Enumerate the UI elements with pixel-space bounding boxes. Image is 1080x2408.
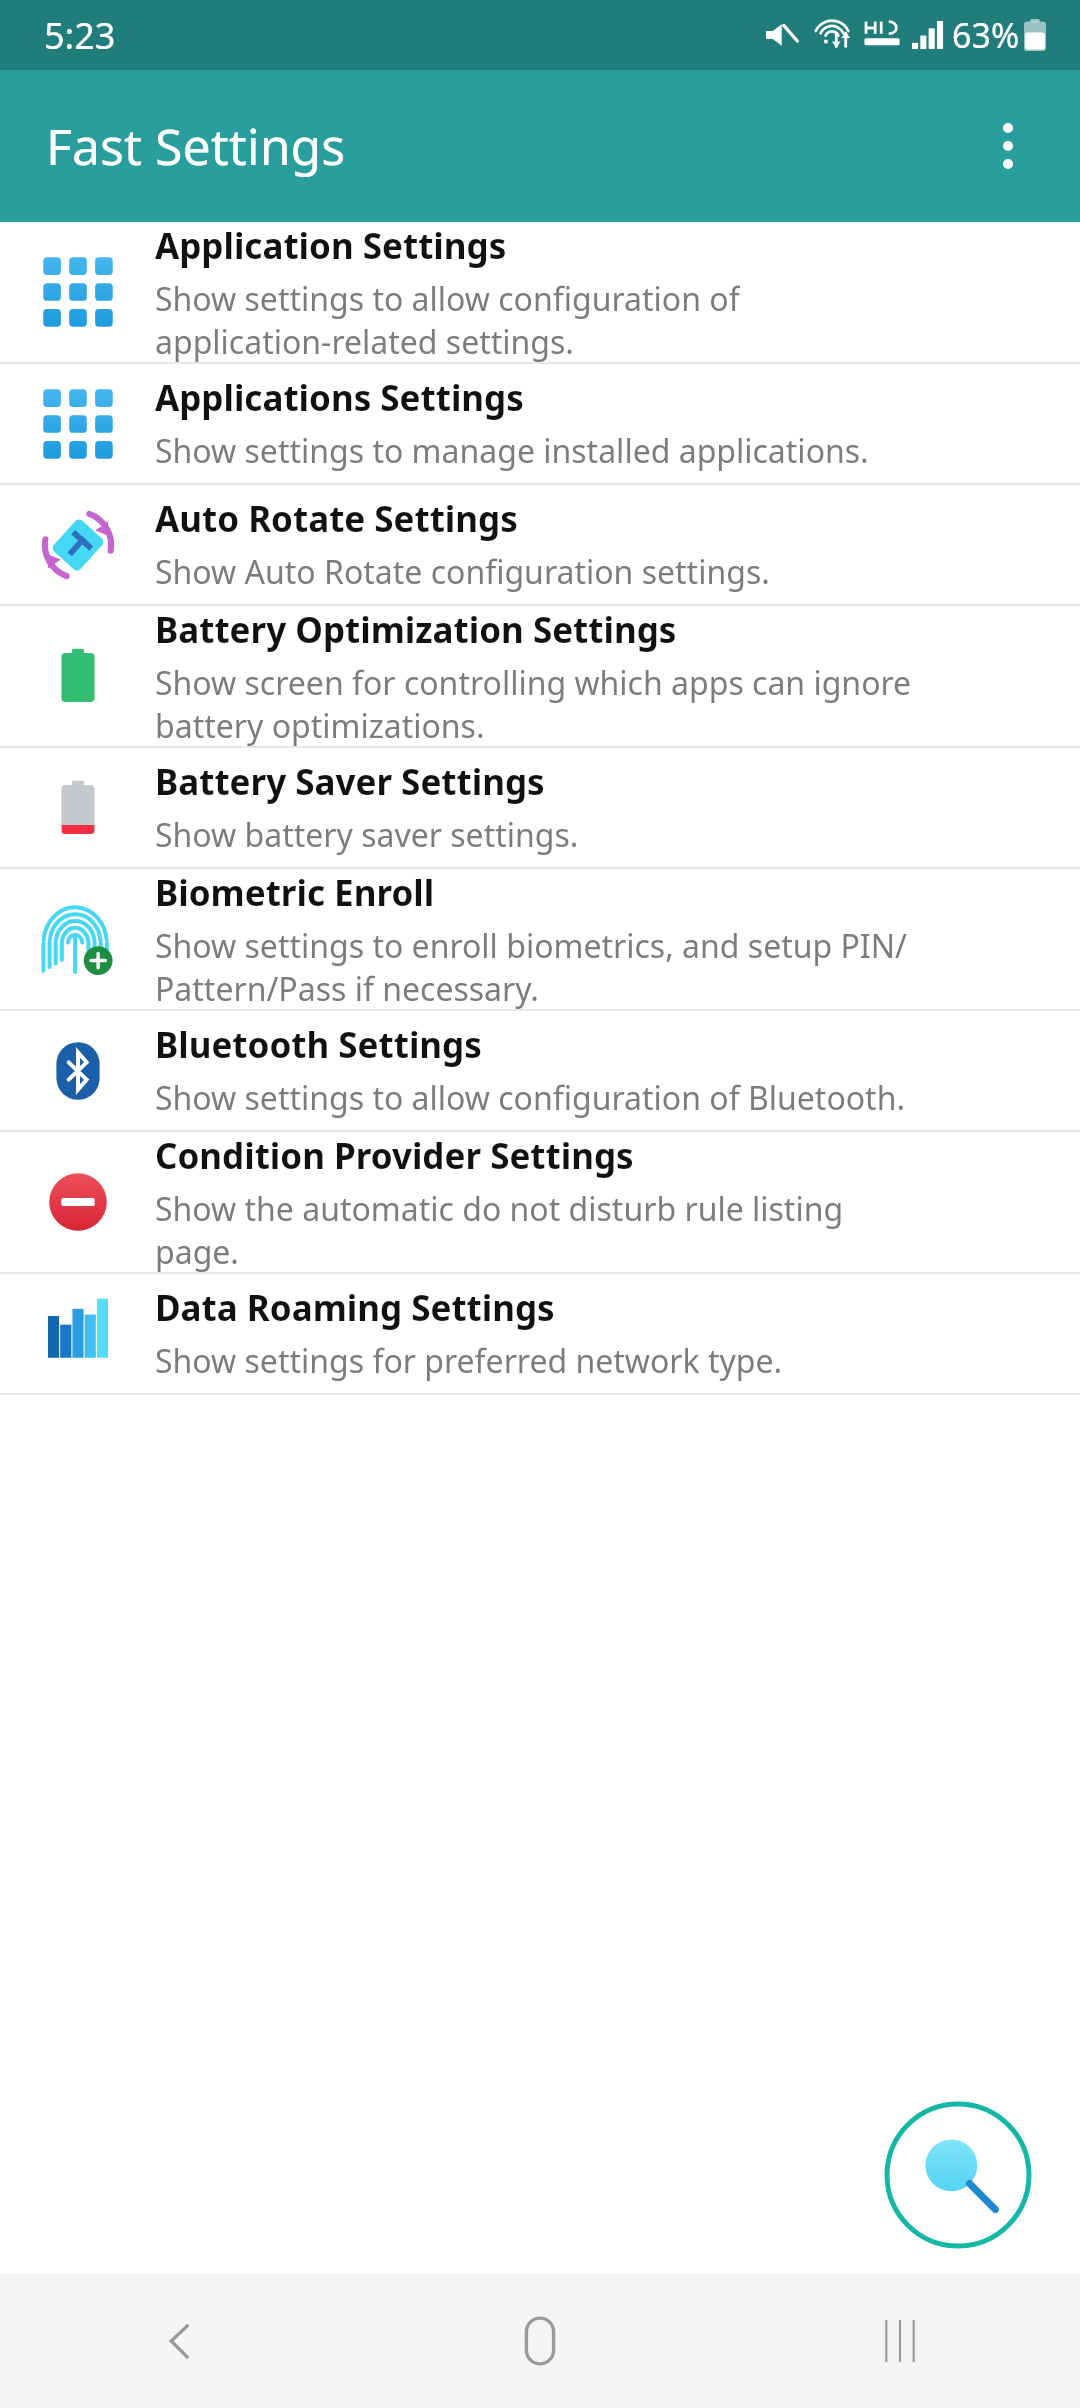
- staticText: Fast Settings: [46, 112, 346, 180]
- staticText: Show settings to allow configuration of …: [155, 1076, 906, 1120]
- staticText: Show screen for controlling which apps c…: [155, 661, 912, 746]
- button[interactable]: Biometric Enroll: [0, 869, 1080, 1009]
- button[interactable]: Battery Saver Settings: [0, 748, 1080, 867]
- button[interactable]: Back: [0, 2273, 360, 2408]
- button[interactable]: Bluetooth Settings: [0, 1011, 1080, 1130]
- staticText: Data Roaming Settings: [155, 1284, 555, 1332]
- staticText: Bluetooth Settings: [155, 1021, 482, 1069]
- staticText: Show settings to allow configuration of …: [155, 277, 740, 362]
- button[interactable]: Battery Optimization Settings: [0, 606, 1080, 746]
- staticText: Show settings to manage installed applic…: [155, 429, 869, 473]
- button[interactable]: Data Roaming Settings: [0, 1274, 1080, 1393]
- staticText: Application Settings: [155, 222, 507, 270]
- staticText: Applications Settings: [155, 374, 524, 422]
- staticText: Auto Rotate Settings: [155, 495, 518, 543]
- button[interactable]: Auto Rotate Settings: [0, 485, 1080, 604]
- button[interactable]: Search: [884, 2101, 1032, 2249]
- staticText: Show the automatic do not disturb rule l…: [155, 1187, 844, 1272]
- staticText: Show Auto Rotate configuration settings.: [155, 550, 770, 594]
- staticText: Battery Optimization Settings: [155, 606, 677, 654]
- button[interactable]: Home: [360, 2273, 720, 2408]
- staticText: 63%: [952, 12, 1020, 58]
- button[interactable]: Applications Settings: [0, 364, 1080, 483]
- button[interactable]: Condition Provider Settings: [0, 1132, 1080, 1272]
- button[interactable]: Application Settings: [0, 222, 1080, 362]
- staticText: Show settings for preferred network type…: [155, 1339, 783, 1383]
- staticText: Show battery saver settings.: [155, 813, 579, 857]
- button[interactable]: Recent apps: [720, 2273, 1080, 2408]
- staticText: Condition Provider Settings: [155, 1132, 634, 1180]
- staticText: 5:23: [44, 11, 116, 60]
- button[interactable]: More options: [960, 98, 1056, 194]
- staticText: Battery Saver Settings: [155, 758, 545, 806]
- staticText: Show settings to enroll biometrics, and …: [155, 924, 907, 1009]
- staticText: Biometric Enroll: [155, 869, 435, 917]
